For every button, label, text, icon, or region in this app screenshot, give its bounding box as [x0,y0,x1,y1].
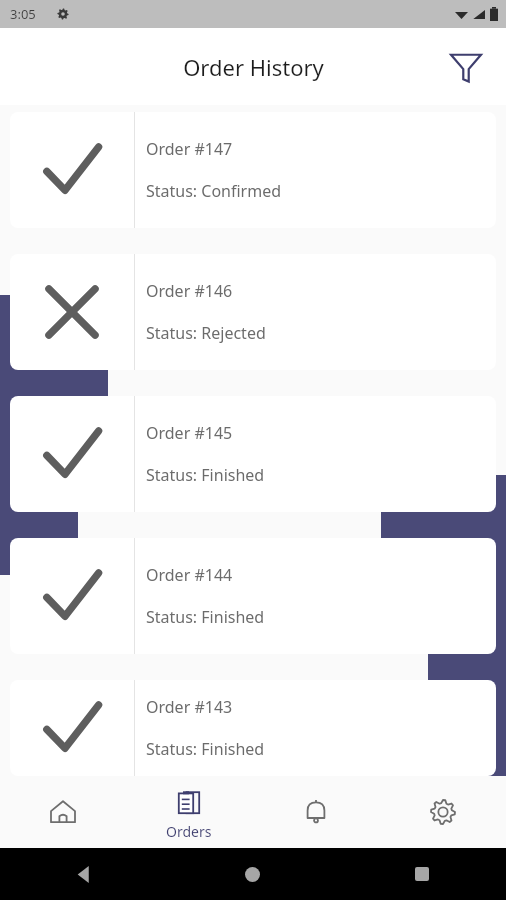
button[interactable]: Settings [379,776,506,848]
button[interactable]: Order #145 [10,396,496,512]
staticText: Order #145 [146,422,233,444]
staticText: Order History [183,52,324,82]
button[interactable]: Order #144 [10,538,496,654]
button[interactable]: Order #143 [10,680,496,776]
staticText: Order #144 [146,564,233,586]
staticText: Order #143 [146,696,233,718]
staticText: Order #146 [146,280,233,302]
staticText: Status: Confirmed [146,180,282,202]
button[interactable]: Orders [126,776,252,848]
staticText: Status: Finished [146,738,265,760]
staticText: 3:05 [10,5,36,23]
button[interactable]: Notifications [252,776,379,848]
staticText: Status: Finished [146,464,265,486]
staticText: Order #147 [146,138,233,160]
button[interactable]: Filter [442,43,490,91]
button[interactable]: Order #146 [10,254,496,370]
staticText: Status: Finished [146,606,265,628]
staticText: Status: Rejected [146,322,266,344]
button[interactable]: Order #147 [10,112,496,228]
button[interactable]: Home [0,776,126,848]
staticText: Orders [166,822,212,841]
